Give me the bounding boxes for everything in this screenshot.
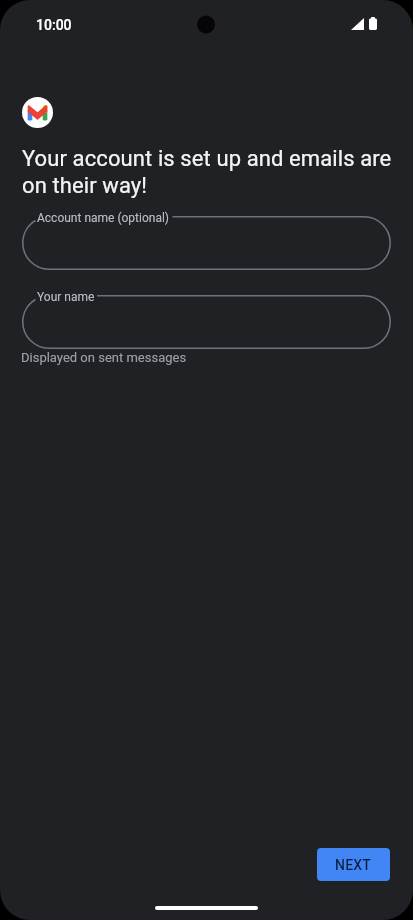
- staticText: Account name (optional): [37, 211, 170, 225]
- button[interactable]: Account name (optional): [22, 216, 391, 270]
- staticText: Your name: [37, 290, 95, 304]
- staticText: Your account is set up and emails are on…: [22, 146, 393, 198]
- button[interactable]: Your name: [22, 295, 391, 349]
- staticText: NEXT: [335, 857, 372, 873]
- button[interactable]: NEXT: [317, 848, 390, 881]
- staticText: 10:00: [36, 17, 72, 33]
- staticText: Displayed on sent messages: [21, 350, 187, 365]
- other: Battery: [369, 17, 377, 30]
- other: Signal strength: [351, 18, 364, 30]
